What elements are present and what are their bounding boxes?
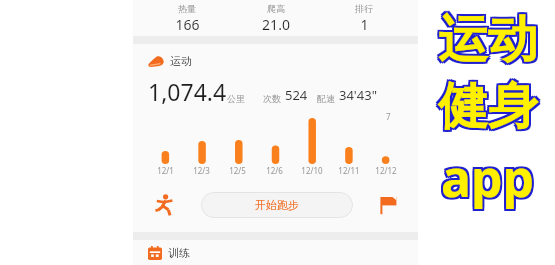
staticText: 运动 — [438, 8, 538, 71]
staticText: 1 — [360, 15, 369, 34]
staticText: 运动 — [440, 8, 540, 71]
staticText: 12/12 — [375, 165, 397, 176]
staticText: 12/10 — [301, 165, 323, 176]
staticText: 7 — [386, 111, 391, 122]
staticText: 12/1 — [157, 165, 174, 176]
staticText: 运动 — [436, 6, 536, 69]
staticText: 公里 — [227, 93, 245, 104]
staticText: app — [443, 142, 537, 210]
staticText: 12/11 — [338, 165, 360, 176]
button[interactable]: 爬高 — [236, 0, 316, 34]
staticText: 排行 — [355, 3, 373, 14]
staticText: 健身 — [436, 75, 536, 138]
button[interactable]: 热量 — [147, 0, 227, 34]
staticText: 健身 — [436, 73, 536, 136]
staticText: 运动 — [170, 54, 192, 68]
staticText: app — [441, 142, 535, 210]
staticText: 524 — [285, 86, 308, 104]
staticText: 健身 — [438, 77, 538, 140]
staticText: 运动 — [436, 10, 536, 73]
staticText: 健身 — [438, 73, 538, 136]
staticText: 健身 — [440, 75, 540, 138]
staticText: 运动 — [440, 6, 540, 69]
staticText: 12/5 — [229, 165, 246, 176]
staticText: 12/6 — [266, 165, 283, 176]
staticText: 运动 — [438, 10, 538, 73]
staticText: app — [439, 144, 533, 212]
staticText: 166 — [175, 15, 200, 34]
staticText: 次数 — [263, 93, 281, 104]
staticText: 配速 — [317, 93, 335, 104]
staticText: app — [439, 142, 533, 210]
staticText: app — [443, 146, 537, 214]
staticText: 34'43" — [339, 86, 377, 104]
staticText: app — [441, 146, 535, 214]
staticText: 健身 — [438, 75, 538, 138]
staticText: app — [441, 144, 535, 212]
staticText: 爬高 — [267, 3, 285, 14]
button[interactable]: 开始跑步 — [201, 192, 353, 218]
staticText: 运动 — [440, 10, 540, 73]
staticText: 健身 — [440, 73, 540, 136]
staticText: 健身 — [440, 77, 540, 140]
staticText: 12/3 — [193, 165, 210, 176]
staticText: 运动 — [436, 8, 536, 71]
button[interactable]: Running activity — [147, 188, 181, 222]
staticText: 健身 — [436, 77, 536, 140]
button[interactable]: 运动 — [148, 54, 192, 68]
staticText: app — [443, 144, 537, 212]
button[interactable]: 排行 — [324, 0, 404, 34]
staticText: 运动 — [438, 6, 538, 69]
staticText: 开始跑步 — [255, 198, 299, 212]
staticText: 训练 — [168, 246, 190, 260]
staticText: 1,074.4 — [148, 76, 227, 107]
staticText: app — [439, 146, 533, 214]
button[interactable]: Goal flag — [371, 188, 405, 222]
button[interactable]: 训练 — [148, 246, 190, 260]
staticText: 热量 — [178, 3, 196, 14]
staticText: 21.0 — [262, 15, 290, 34]
